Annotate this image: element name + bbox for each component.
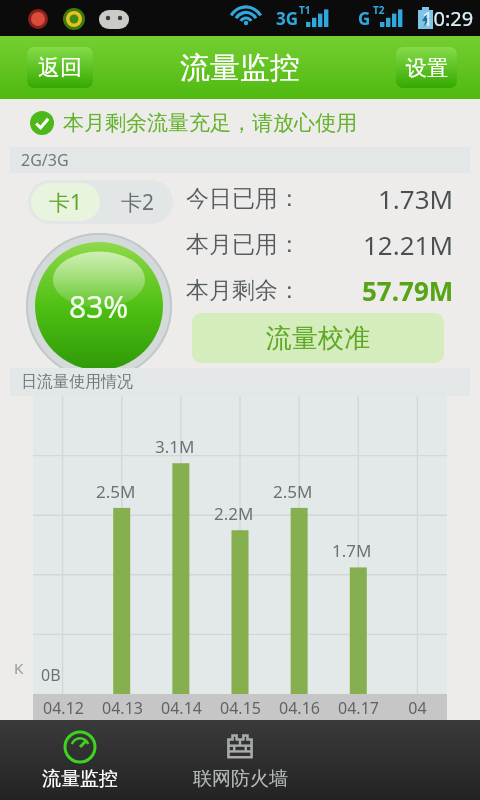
staticText: 卡1 bbox=[49, 188, 83, 217]
staticText: K bbox=[14, 658, 24, 678]
button[interactable]: 设置 bbox=[396, 47, 457, 88]
staticText: G bbox=[358, 7, 371, 30]
staticText: 3G bbox=[276, 7, 299, 30]
button[interactable]: 流量校准 bbox=[192, 313, 444, 363]
staticText: 3.1M bbox=[155, 435, 195, 458]
staticText: 返回 bbox=[38, 54, 82, 82]
staticText: T1 bbox=[299, 3, 311, 17]
button[interactable]: 流量监控 bbox=[0, 720, 160, 800]
staticText: 联网防火墙 bbox=[193, 767, 288, 791]
staticText: 1.7M bbox=[332, 539, 372, 562]
staticText: 12.21M bbox=[363, 227, 454, 262]
staticText: 83% bbox=[69, 286, 129, 327]
staticText: 10:29 bbox=[422, 5, 474, 32]
staticText: 04.13 bbox=[102, 697, 143, 719]
staticText: 本月已用： bbox=[186, 230, 301, 259]
button[interactable]: 卡1 bbox=[31, 183, 100, 221]
staticText: 本月剩余流量充足，请放心使用 bbox=[63, 110, 357, 136]
button[interactable]: 返回 bbox=[27, 47, 93, 88]
staticText: 2.2M bbox=[214, 502, 254, 525]
staticText: 57.79M bbox=[362, 273, 454, 308]
staticText: 04.15 bbox=[220, 697, 261, 719]
staticText: 04.14 bbox=[161, 697, 202, 719]
staticText: 今日已用： bbox=[186, 184, 301, 213]
staticText: 流量监控 bbox=[180, 49, 300, 87]
button[interactable]: 卡2 bbox=[103, 183, 172, 221]
staticText: 2G/3G bbox=[21, 149, 69, 171]
staticText: T2 bbox=[373, 3, 385, 17]
staticText: 2.5M bbox=[96, 480, 136, 503]
staticText: 04.12 bbox=[43, 697, 84, 719]
staticText: 04.16 bbox=[279, 697, 320, 719]
staticText: 流量校准 bbox=[266, 322, 370, 355]
staticText: 流量监控 bbox=[42, 767, 118, 791]
button[interactable]: 联网防火墙 bbox=[160, 720, 320, 800]
staticText: 1.73M bbox=[378, 181, 454, 216]
staticText: 04 bbox=[408, 697, 427, 719]
staticText: 0B bbox=[41, 664, 61, 686]
staticText: 设置 bbox=[406, 55, 448, 81]
staticText: 2.5M bbox=[273, 480, 313, 503]
staticText: 日流量使用情况 bbox=[21, 372, 133, 392]
staticText: 04.17 bbox=[338, 697, 379, 719]
staticText: 本月剩余： bbox=[186, 276, 301, 305]
staticText: 卡2 bbox=[121, 188, 155, 217]
